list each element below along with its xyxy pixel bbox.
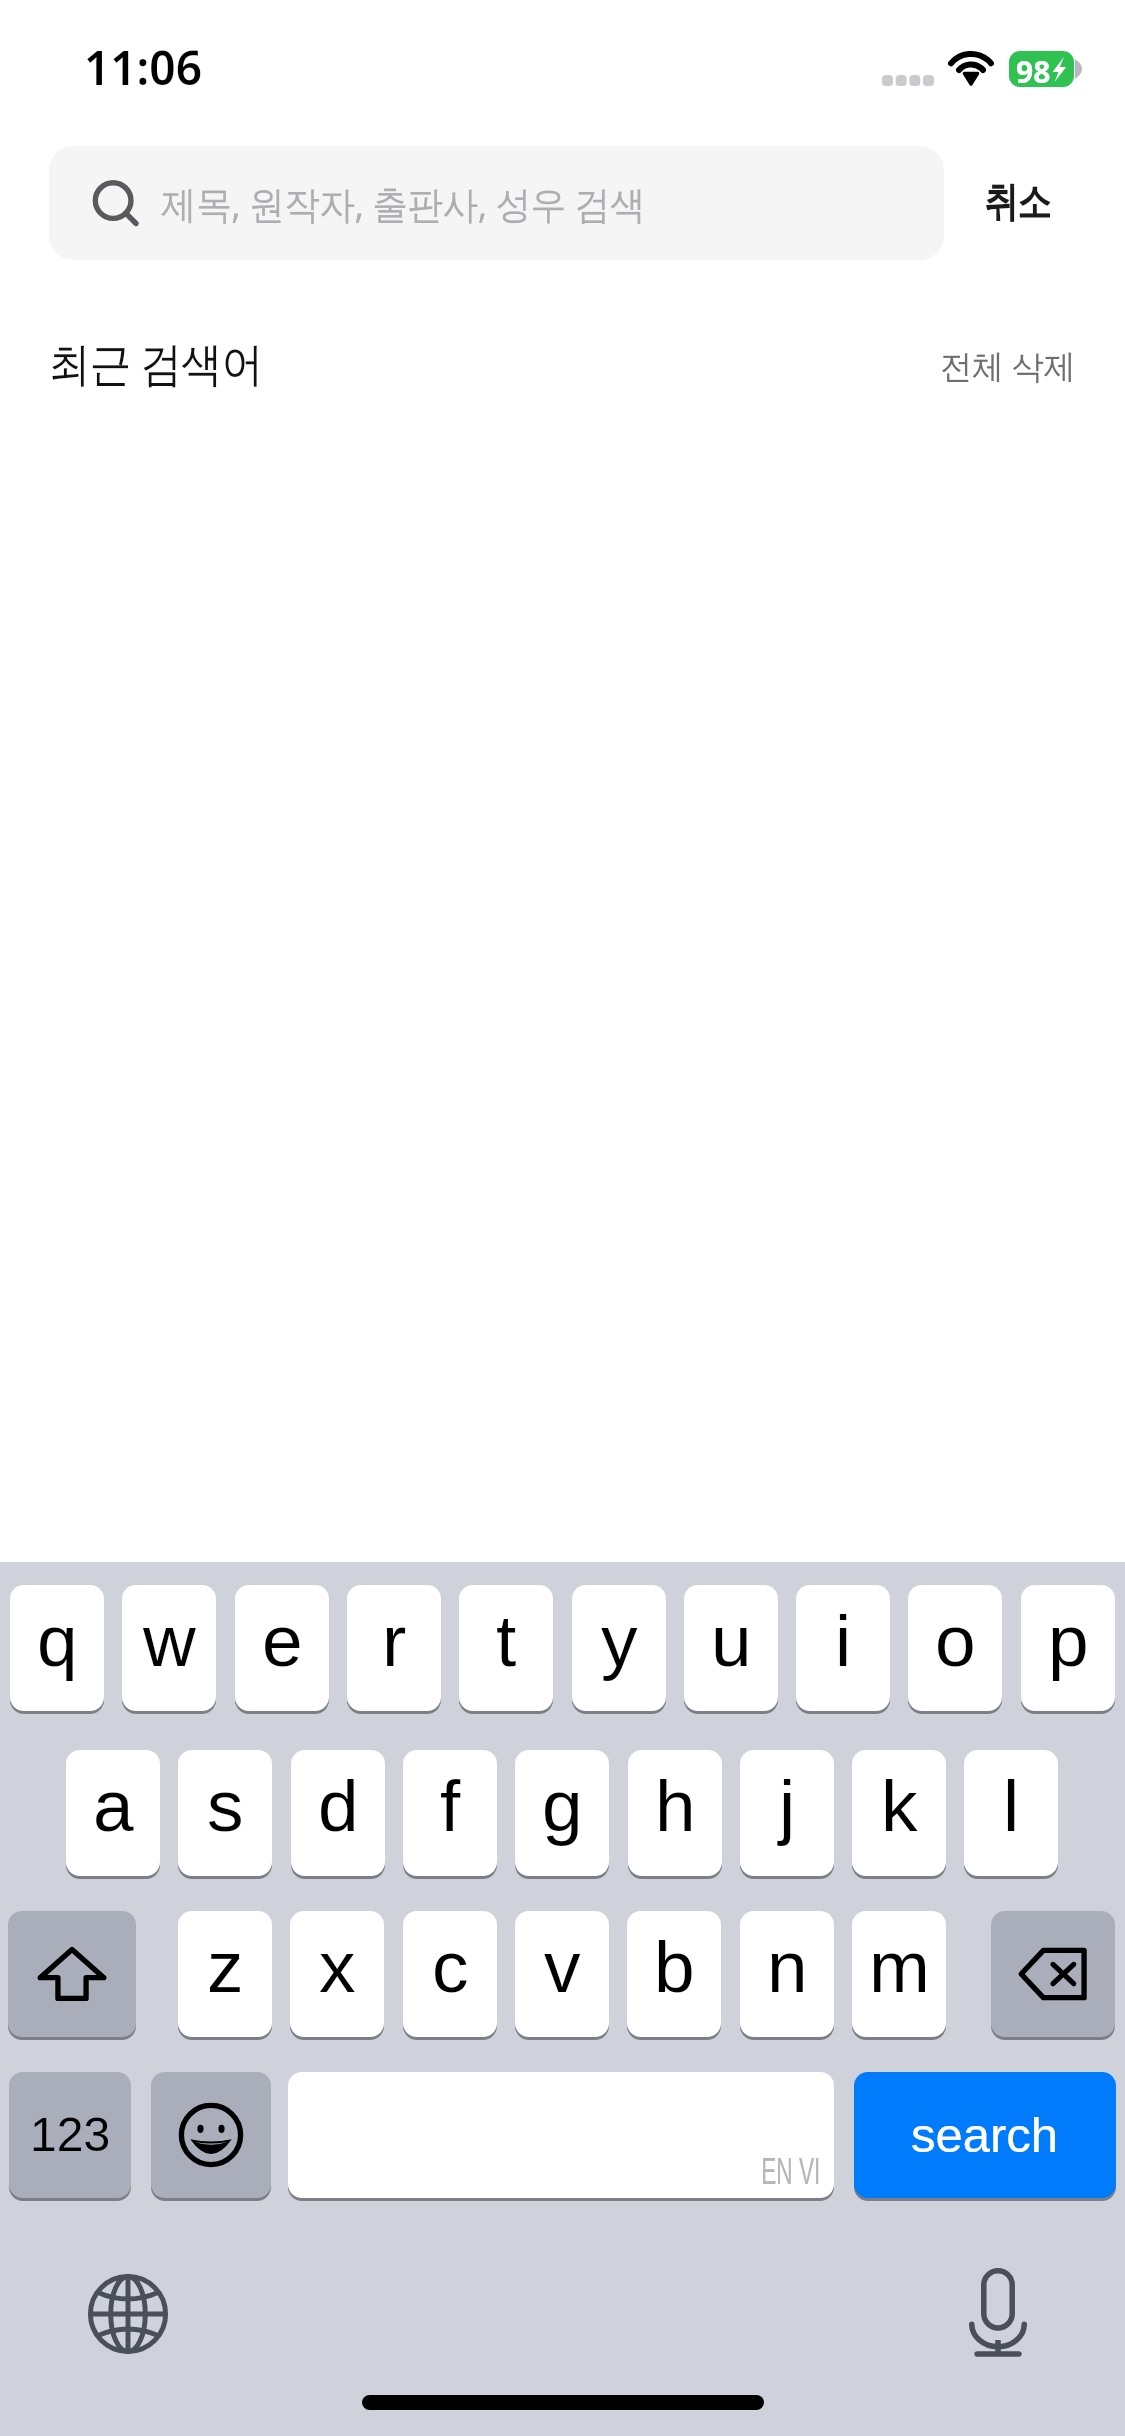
button[interactable]: Space (288, 2072, 834, 2198)
staticText: k (881, 1765, 918, 1847)
button[interactable]: k (852, 1750, 946, 1876)
staticText: 전체 삭제 (940, 343, 1076, 388)
button[interactable]: d (291, 1750, 385, 1876)
button[interactable]: g (515, 1750, 609, 1876)
button[interactable]: 최근 검색어 (49, 331, 309, 393)
button[interactable]: t (459, 1585, 553, 1711)
staticText: e (262, 1600, 303, 1682)
staticText: j (779, 1765, 796, 1847)
staticText: 취소 (984, 177, 1051, 229)
button[interactable]: 취소 (962, 146, 1072, 260)
button[interactable]: 제목, 원작자, 출판사, 성우 검색 (49, 146, 944, 260)
button[interactable]: b (627, 1911, 721, 2037)
staticText: l (1003, 1765, 1020, 1847)
staticText: 11:06 (84, 36, 202, 99)
staticText: a (93, 1765, 134, 1847)
button[interactable]: Dictation (969, 2268, 1027, 2358)
staticText: w (143, 1600, 196, 1682)
button[interactable]: l (964, 1750, 1058, 1876)
staticText: v (544, 1926, 581, 2008)
staticText: 98 (1016, 51, 1051, 87)
button[interactable]: v (515, 1911, 609, 2037)
button[interactable]: n (740, 1911, 834, 2037)
staticText: EN VI (761, 2151, 821, 2191)
button[interactable]: q (10, 1585, 104, 1711)
staticText: o (935, 1600, 976, 1682)
button[interactable]: h (628, 1750, 722, 1876)
button[interactable]: a (66, 1750, 160, 1876)
button[interactable]: u (684, 1585, 778, 1711)
staticText: t (496, 1600, 517, 1682)
button[interactable]: search (854, 2072, 1116, 2198)
button[interactable]: p (1021, 1585, 1115, 1711)
staticText: search (911, 2108, 1059, 2163)
button[interactable]: f (403, 1750, 497, 1876)
button[interactable]: j (740, 1750, 834, 1876)
staticText: p (1048, 1600, 1089, 1682)
button[interactable]: y (572, 1585, 666, 1711)
button[interactable]: x (290, 1911, 384, 2037)
button[interactable]: s (178, 1750, 272, 1876)
button[interactable]: Shift (8, 1911, 136, 2037)
button[interactable]: 전체 삭제 (940, 334, 1115, 396)
staticText: d (318, 1765, 359, 1847)
staticText: 123 (30, 2108, 111, 2162)
button[interactable]: e (235, 1585, 329, 1711)
button[interactable]: c (403, 1911, 497, 2037)
staticText: s (207, 1765, 244, 1847)
button[interactable]: i (796, 1585, 890, 1711)
staticText: 제목, 원작자, 출판사, 성우 검색 (161, 177, 645, 229)
staticText: u (711, 1600, 752, 1682)
staticText: g (542, 1765, 583, 1847)
button[interactable]: Emoji (151, 2072, 271, 2198)
staticText: i (835, 1600, 852, 1682)
staticText: f (440, 1765, 461, 1847)
staticText: 최근 검색어 (49, 331, 263, 393)
staticText: r (382, 1600, 407, 1682)
staticText: c (432, 1926, 469, 2008)
button[interactable]: Backspace (991, 1911, 1115, 2037)
staticText: x (319, 1926, 356, 2008)
staticText: h (655, 1765, 696, 1847)
button[interactable]: z (178, 1911, 272, 2037)
staticText: m (869, 1926, 930, 2008)
staticText: b (654, 1926, 695, 2008)
button[interactable]: r (347, 1585, 441, 1711)
staticText: y (601, 1600, 638, 1682)
button[interactable]: m (852, 1911, 946, 2037)
staticText: z (207, 1926, 244, 2008)
button[interactable]: Change keyboard (88, 2274, 168, 2354)
button[interactable]: 123 (9, 2072, 131, 2198)
staticText: q (37, 1600, 78, 1682)
staticText: n (767, 1926, 808, 2008)
button[interactable]: w (122, 1585, 216, 1711)
button[interactable]: o (908, 1585, 1002, 1711)
